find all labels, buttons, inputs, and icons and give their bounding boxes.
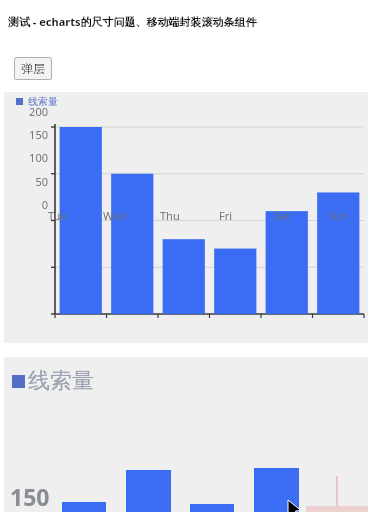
staticText: 150 [12,127,48,142]
staticText: Sat [274,208,291,223]
staticText: 150 [10,481,50,512]
staticText: Tue [48,208,67,223]
staticText: Sun [328,208,348,223]
staticText: 100 [12,150,48,165]
staticText: 弹层 [21,61,45,76]
staticText: Fri [219,208,233,223]
staticText: 50 [12,174,48,189]
staticText: Wed [103,208,126,223]
staticText: 线索量 [28,95,58,108]
button[interactable]: 线索量 [4,92,368,343]
staticText: Thu [160,208,180,223]
button[interactable]: 弹层 [14,57,52,80]
button[interactable]: 线索量 [4,357,368,512]
staticText: 测试 - echarts的尺寸问题、移动端封装滚动条组件 [8,14,257,29]
staticText: 200 [12,104,48,119]
staticText: 0 [12,197,48,212]
staticText: 线索量 [28,367,94,395]
